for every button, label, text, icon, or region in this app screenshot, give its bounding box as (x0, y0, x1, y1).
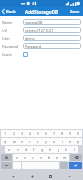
staticText: h (49, 147, 52, 152)
staticText: server://127.0.0.1 (25, 28, 54, 33)
staticText: i (62, 139, 63, 144)
button[interactable]: p (74, 138, 82, 145)
button[interactable]: 7 (50, 130, 58, 137)
staticText: storageDB (25, 20, 43, 25)
other: Guest checkbox (23, 52, 28, 57)
button[interactable]: Home (27, 172, 38, 180)
button[interactable]: t (34, 138, 42, 145)
staticText: r (29, 139, 31, 144)
staticText: 1 (4, 131, 7, 136)
button[interactable]: Back (0, 7, 19, 16)
staticText: t (37, 139, 39, 144)
button[interactable]: a (5, 146, 14, 153)
staticText: Name (2, 20, 13, 25)
button[interactable]: Symbols (1, 162, 12, 169)
button[interactable]: x (21, 154, 29, 161)
staticText: d (25, 147, 28, 152)
staticText: 7 (53, 131, 56, 136)
button[interactable]: s (14, 146, 22, 153)
staticText: 2 (13, 131, 16, 136)
button[interactable]: h (46, 146, 54, 153)
staticText: q (4, 139, 7, 144)
staticText: w (13, 139, 16, 144)
staticText: b (48, 155, 51, 160)
button[interactable]: Backspace (70, 154, 82, 161)
button[interactable]: 0 (74, 130, 82, 137)
button[interactable]: f (30, 146, 38, 153)
staticText: Password (2, 44, 19, 49)
staticText: o (69, 139, 72, 144)
staticText: s (17, 147, 19, 152)
button[interactable]: w (10, 138, 18, 145)
staticText: demo (25, 36, 35, 41)
staticText: e (21, 139, 24, 144)
staticText: g (41, 147, 44, 152)
button[interactable]: Password (0, 42, 83, 50)
staticText: 8 (61, 131, 64, 136)
staticText: j (58, 147, 59, 152)
button[interactable]: r (26, 138, 34, 145)
button[interactable]: i (58, 138, 66, 145)
button[interactable]: Shift (1, 154, 12, 161)
staticText: Password (25, 44, 41, 49)
button[interactable]: 9 (66, 130, 74, 137)
button[interactable]: 5 (34, 130, 42, 137)
button[interactable]: Keyboard (64, 172, 75, 180)
button[interactable]: m (61, 154, 69, 161)
button[interactable]: Back (8, 172, 19, 180)
button[interactable]: u (50, 138, 58, 145)
button[interactable]: e (18, 138, 26, 145)
button[interactable]: c (29, 154, 37, 161)
staticText: 0 (77, 131, 80, 136)
button[interactable]: 8 (58, 130, 66, 137)
button[interactable]: g (38, 146, 46, 153)
button[interactable]: 2 (10, 130, 18, 137)
staticText: x (24, 155, 26, 160)
button[interactable]: k (62, 146, 70, 153)
staticText: Url (2, 28, 8, 33)
staticText: n (56, 155, 59, 160)
button[interactable]: User (0, 34, 83, 42)
staticText: f (33, 147, 35, 152)
button[interactable]: v (37, 154, 45, 161)
staticText: Back (6, 9, 16, 15)
button[interactable]: 3 (18, 130, 26, 137)
button[interactable]: j (54, 146, 62, 153)
staticText: 6 (45, 131, 48, 136)
staticText: User (2, 36, 10, 41)
staticText: p (77, 139, 80, 144)
staticText: a (8, 147, 11, 152)
staticText: Save (70, 9, 80, 15)
staticText: v (40, 155, 42, 160)
button[interactable]: l (70, 146, 78, 153)
button[interactable]: n (53, 154, 61, 161)
button[interactable]: z (13, 154, 21, 161)
button[interactable]: 6 (42, 130, 50, 137)
button[interactable]: Name (0, 18, 83, 26)
staticText: m (63, 155, 67, 160)
button[interactable]: Recents (45, 172, 56, 180)
button[interactable]: q (1, 138, 10, 145)
button[interactable]: 4 (26, 130, 34, 137)
staticText: 9 (69, 131, 72, 136)
staticText: k (65, 147, 67, 152)
staticText: AddStorageDB (25, 9, 59, 15)
button[interactable]: d (22, 146, 30, 153)
button[interactable]: Guest (0, 50, 83, 58)
button[interactable]: Save (67, 7, 83, 16)
staticText: 3 (21, 131, 24, 136)
button[interactable]: y (42, 138, 50, 145)
staticText: c (32, 155, 34, 160)
staticText: 4 (29, 131, 32, 136)
button[interactable]: b (45, 154, 53, 161)
button[interactable]: Enter (69, 162, 82, 169)
button[interactable]: 1 (1, 130, 10, 137)
button[interactable]: Url (0, 26, 83, 34)
button[interactable]: o (66, 138, 74, 145)
staticText: 5 (37, 131, 40, 136)
staticText: z (16, 155, 18, 160)
staticText: l (74, 147, 75, 152)
